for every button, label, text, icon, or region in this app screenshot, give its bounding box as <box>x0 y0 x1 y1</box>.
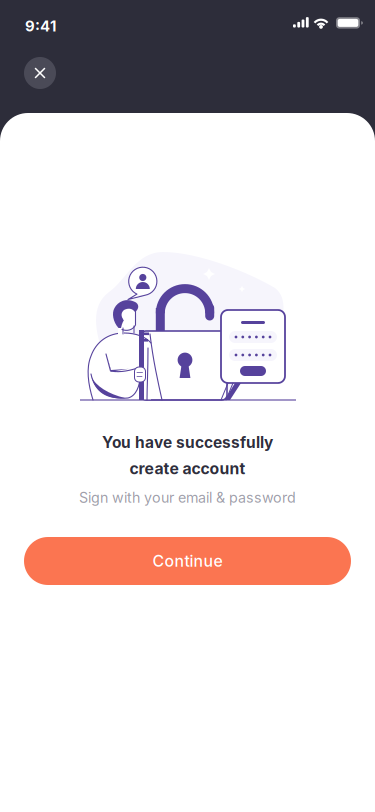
button[interactable]: Close <box>24 57 56 89</box>
staticText: You have successfully <box>102 433 273 452</box>
staticText: Continue <box>152 551 222 571</box>
staticText: 9:41 <box>25 17 56 35</box>
staticText: create account <box>129 459 245 478</box>
button[interactable]: Continue <box>24 537 351 585</box>
staticText: Sign with your email & password <box>79 489 296 506</box>
